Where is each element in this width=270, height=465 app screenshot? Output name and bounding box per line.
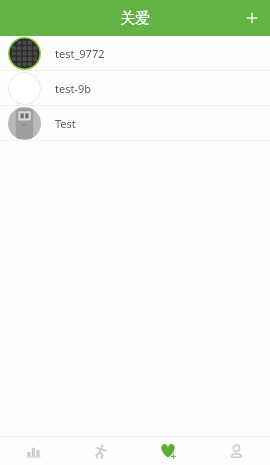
- button[interactable]: Activity: [67, 437, 134, 465]
- button[interactable]: Add contact: [234, 0, 270, 36]
- button[interactable]: test_9772: [0, 36, 270, 70]
- staticText: test_9772: [55, 46, 105, 61]
- staticText: 关爱: [120, 9, 150, 28]
- button[interactable]: Profile: [202, 437, 270, 465]
- button[interactable]: Care: [134, 437, 202, 465]
- staticText: Test: [55, 116, 76, 131]
- button[interactable]: Statistics: [0, 437, 67, 465]
- button[interactable]: test-9b: [0, 71, 270, 105]
- staticText: test-9b: [55, 81, 92, 96]
- button[interactable]: Test: [0, 106, 270, 140]
